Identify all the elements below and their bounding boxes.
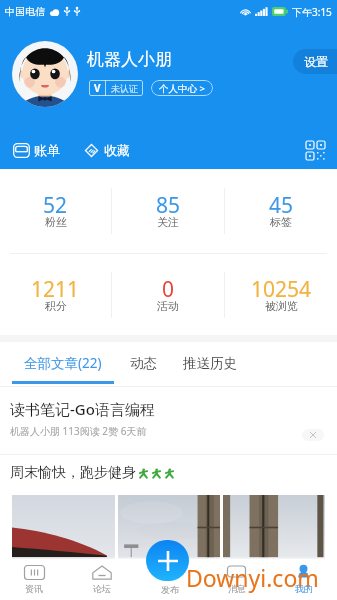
button[interactable]: 论坛 [68, 559, 136, 600]
staticText: 52 [43, 191, 68, 220]
button[interactable]: Delete [302, 429, 324, 441]
staticText: 发布 [161, 584, 179, 595]
button[interactable]: 收藏 [84, 142, 130, 158]
staticText: 论坛 [93, 583, 111, 594]
staticText: 未认证 [111, 83, 138, 94]
button[interactable]: 1211 [0, 254, 111, 335]
staticText: 45 [269, 191, 294, 220]
staticText: 账单 [34, 142, 60, 158]
staticText: 0 [162, 275, 175, 304]
staticText: 全部文章(22) [24, 354, 102, 372]
button[interactable]: 个人中心 > [151, 80, 213, 96]
button[interactable]: Scan QR code [306, 141, 325, 160]
staticText: 标签 [270, 215, 292, 229]
staticText: 关注 [157, 215, 179, 229]
staticText: 周末愉快，跑步健身 [10, 464, 136, 482]
staticText: 机器人小朋 [87, 49, 172, 70]
staticText: Downyi.com [186, 562, 319, 593]
button[interactable]: 消息 [203, 559, 270, 600]
staticText: 活动 [157, 299, 179, 313]
staticText: 读书笔记-Go语言编程 [10, 399, 155, 419]
button[interactable]: 账单 [13, 142, 60, 158]
staticText: 动态 [130, 355, 157, 372]
staticText: 收藏 [104, 142, 130, 158]
button[interactable]: 读书笔记-Go语言编程 [0, 387, 337, 454]
button[interactable]: 10254 [225, 254, 337, 335]
staticText: 个人中心 > [159, 82, 205, 95]
button[interactable]: V [89, 80, 143, 96]
staticText: 设置 [304, 54, 328, 69]
button[interactable]: 我的 [270, 559, 337, 600]
button[interactable]: 全部文章(22) [0, 342, 126, 386]
button[interactable]: 动态 [126, 342, 161, 386]
button[interactable]: 周末愉快，跑步健身 [0, 455, 337, 560]
button[interactable]: 0 [112, 254, 224, 335]
staticText: 积分 [45, 299, 67, 313]
button[interactable]: 52 [0, 169, 111, 253]
staticText: 推送历史 [183, 355, 237, 372]
button[interactable]: Post new [146, 540, 189, 581]
staticText: 消息 [228, 583, 246, 594]
button[interactable]: 资讯 [0, 559, 68, 600]
staticText: 10254 [251, 275, 312, 304]
button[interactable]: 45 [225, 169, 337, 253]
staticText: 机器人小朋 113阅读 2赞 6天前 [10, 424, 147, 438]
staticText: 资讯 [25, 583, 43, 594]
staticText: 下午3:15 [292, 5, 332, 19]
staticText: 1211 [31, 275, 80, 304]
staticText: 被浏览 [265, 299, 298, 313]
staticText: 中国电信 [5, 5, 45, 18]
staticText: V [94, 81, 101, 95]
button[interactable]: 85 [112, 169, 224, 253]
button[interactable]: 推送历史 [161, 342, 258, 386]
staticText: 85 [156, 191, 181, 220]
button[interactable]: 设置 [293, 49, 337, 74]
button[interactable]: Avatar [12, 41, 78, 107]
button[interactable]: 发布 [136, 559, 203, 600]
staticText: 粉丝 [45, 215, 67, 229]
staticText: 我的 [295, 583, 313, 594]
